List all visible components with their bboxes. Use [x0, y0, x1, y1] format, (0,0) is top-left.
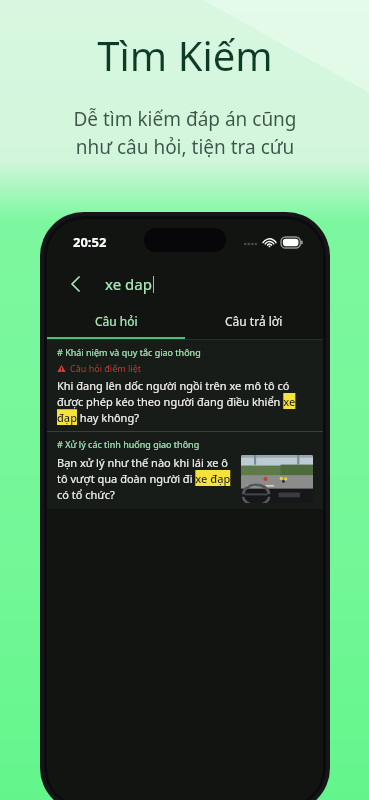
staticText: Câu trả lời — [225, 313, 283, 329]
staticText: # Khái niệm và quy tắc giao thông — [57, 346, 201, 358]
button[interactable]: xe dap — [105, 274, 323, 294]
button[interactable]: Back — [59, 267, 93, 301]
button[interactable]: Câu hỏi — [47, 305, 185, 337]
button[interactable]: # Xử lý các tình huống giao thông — [47, 432, 323, 509]
staticText: xe dap — [105, 274, 152, 294]
staticText: Câu hỏi điểm liệt — [70, 362, 141, 374]
staticText: # Xử lý các tình huống giao thông — [57, 438, 200, 450]
staticText: Tìm Kiếm — [97, 28, 273, 82]
staticText: Khi đang lên dốc người ngồi trên xe mô t… — [57, 378, 313, 425]
staticText: Dễ tìm kiếm đáp án cũng như câu hỏi, tiệ… — [73, 106, 297, 160]
staticText: Bạn xử lý như thế nào khi lái xe ô tô vư… — [57, 455, 233, 502]
staticText: Câu hỏi — [95, 313, 138, 329]
button[interactable]: Câu trả lời — [185, 305, 323, 337]
staticText: 20:52 — [73, 233, 107, 251]
button[interactable]: # Khái niệm và quy tắc giao thông — [47, 340, 323, 431]
